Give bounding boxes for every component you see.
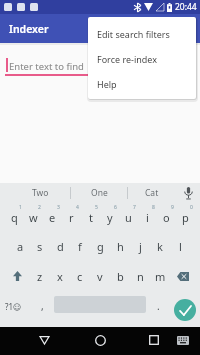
button[interactable]: k [150,232,170,261]
staticText: h [117,239,124,254]
button[interactable]: . [152,293,165,319]
staticText: o [163,210,170,225]
staticText: One [91,187,108,199]
staticText: 2 [38,204,41,211]
staticText: 20:44 [175,1,197,13]
button[interactable]: One [71,183,128,203]
button[interactable]: g [90,232,110,261]
staticText: 5 [95,204,98,211]
staticText: s [37,239,43,254]
staticText: Two [32,187,49,199]
staticText: l [179,239,182,254]
staticText: m [155,269,166,284]
staticText: Enter text to find [9,60,84,73]
staticText: w [29,210,38,225]
button[interactable]: l [170,232,190,261]
button[interactable] [4,261,30,291]
button[interactable]: Force re-index [88,46,196,71]
button[interactable] [176,183,200,203]
staticText: a [17,239,24,254]
staticText: Force re-index [97,53,157,65]
button[interactable]: Edit search filters [88,21,196,46]
button[interactable] [170,261,196,291]
button[interactable]: t [81,203,100,232]
button[interactable]: u [119,203,138,232]
staticText: j [139,239,142,254]
button[interactable]: m [150,261,170,291]
button[interactable] [172,329,194,351]
button[interactable]: j [130,232,150,261]
staticText: 4 [76,204,79,211]
staticText: 6 [114,204,117,211]
staticText: , [41,299,44,313]
staticText: t [89,210,93,225]
button[interactable]: Cat [128,183,176,203]
button[interactable]: h [110,232,130,261]
staticText: Edit search filters [97,28,170,40]
staticText: z [37,269,43,284]
button[interactable]: , [36,293,49,319]
staticText: 3 [57,204,60,211]
staticText: y [107,210,113,225]
button[interactable]: v [90,261,110,291]
staticText: u [125,210,132,225]
staticText: 7 [133,204,136,211]
button[interactable] [33,329,55,351]
button[interactable]: e [43,203,62,232]
staticText: Help [97,78,117,90]
staticText: p [182,210,189,225]
staticText: 0 [190,204,193,211]
button[interactable]: Enter text to find [0,45,200,85]
button[interactable]: i [138,203,157,232]
button[interactable]: r [62,203,81,232]
button[interactable] [89,329,111,351]
staticText: 8 [152,204,155,211]
button[interactable]: b [110,261,130,291]
staticText: x [57,269,63,284]
staticText: c [77,269,83,284]
button[interactable]: y [100,203,119,232]
staticText: . [157,299,160,313]
staticText: ?1☺ [5,301,22,312]
button[interactable]: d [50,232,70,261]
staticText: Indexer [9,22,49,36]
button[interactable]: q [5,203,24,232]
button[interactable]: x [50,261,70,291]
button[interactable]: w [24,203,43,232]
staticText: 1 [19,204,22,211]
button[interactable] [174,299,196,321]
button[interactable]: Two [10,183,70,203]
button[interactable]: c [70,261,90,291]
button[interactable]: s [30,232,50,261]
staticText: e [49,210,56,225]
staticText: k [157,239,163,254]
staticText: d [57,239,64,254]
button[interactable]: a [10,232,30,261]
button[interactable]: f [70,232,90,261]
button[interactable]: Help [88,71,196,96]
staticText: Cat [145,187,159,199]
button[interactable]: z [30,261,50,291]
staticText: b [117,269,124,284]
staticText: i [146,210,149,225]
button[interactable]: p [176,203,195,232]
button[interactable]: n [130,261,150,291]
staticText: f [78,239,82,254]
staticText: n [137,269,144,284]
staticText: r [69,210,74,225]
staticText: q [11,210,18,225]
staticText: 9 [171,204,174,211]
button[interactable]: o [157,203,176,232]
button[interactable] [143,329,165,351]
staticText: g [97,239,104,254]
button[interactable]: ?1☺ [0,293,26,319]
staticText: v [97,269,103,284]
